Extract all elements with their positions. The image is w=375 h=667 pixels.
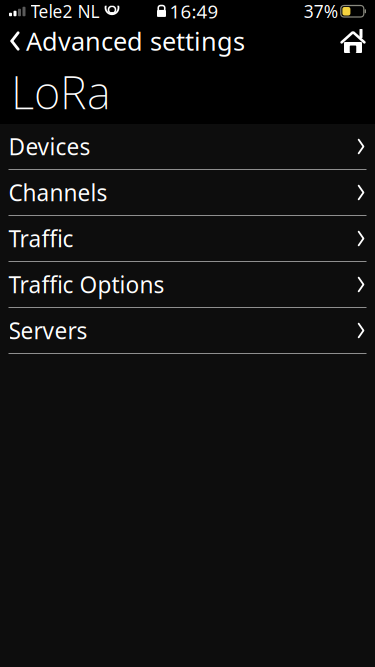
- button[interactable]: Devices: [0, 124, 375, 169]
- button[interactable]: Servers: [0, 308, 375, 353]
- button[interactable]: Home: [331, 23, 375, 59]
- staticText: Traffic Options: [8, 269, 164, 299]
- staticText: Advanced settings: [26, 24, 245, 58]
- staticText: Traffic: [8, 223, 73, 253]
- staticText: Channels: [8, 177, 107, 207]
- staticText: 37%: [304, 0, 338, 23]
- staticText: Devices: [8, 131, 90, 161]
- staticText: 16:49: [169, 0, 218, 24]
- button[interactable]: Traffic: [0, 216, 375, 261]
- staticText: LoRa: [11, 62, 111, 122]
- button[interactable]: Channels: [0, 170, 375, 215]
- staticText: Servers: [8, 315, 87, 345]
- button[interactable]: Advanced settings: [0, 18, 245, 64]
- button[interactable]: Traffic Options: [0, 262, 375, 307]
- staticText: Tele2 NL: [30, 0, 99, 23]
